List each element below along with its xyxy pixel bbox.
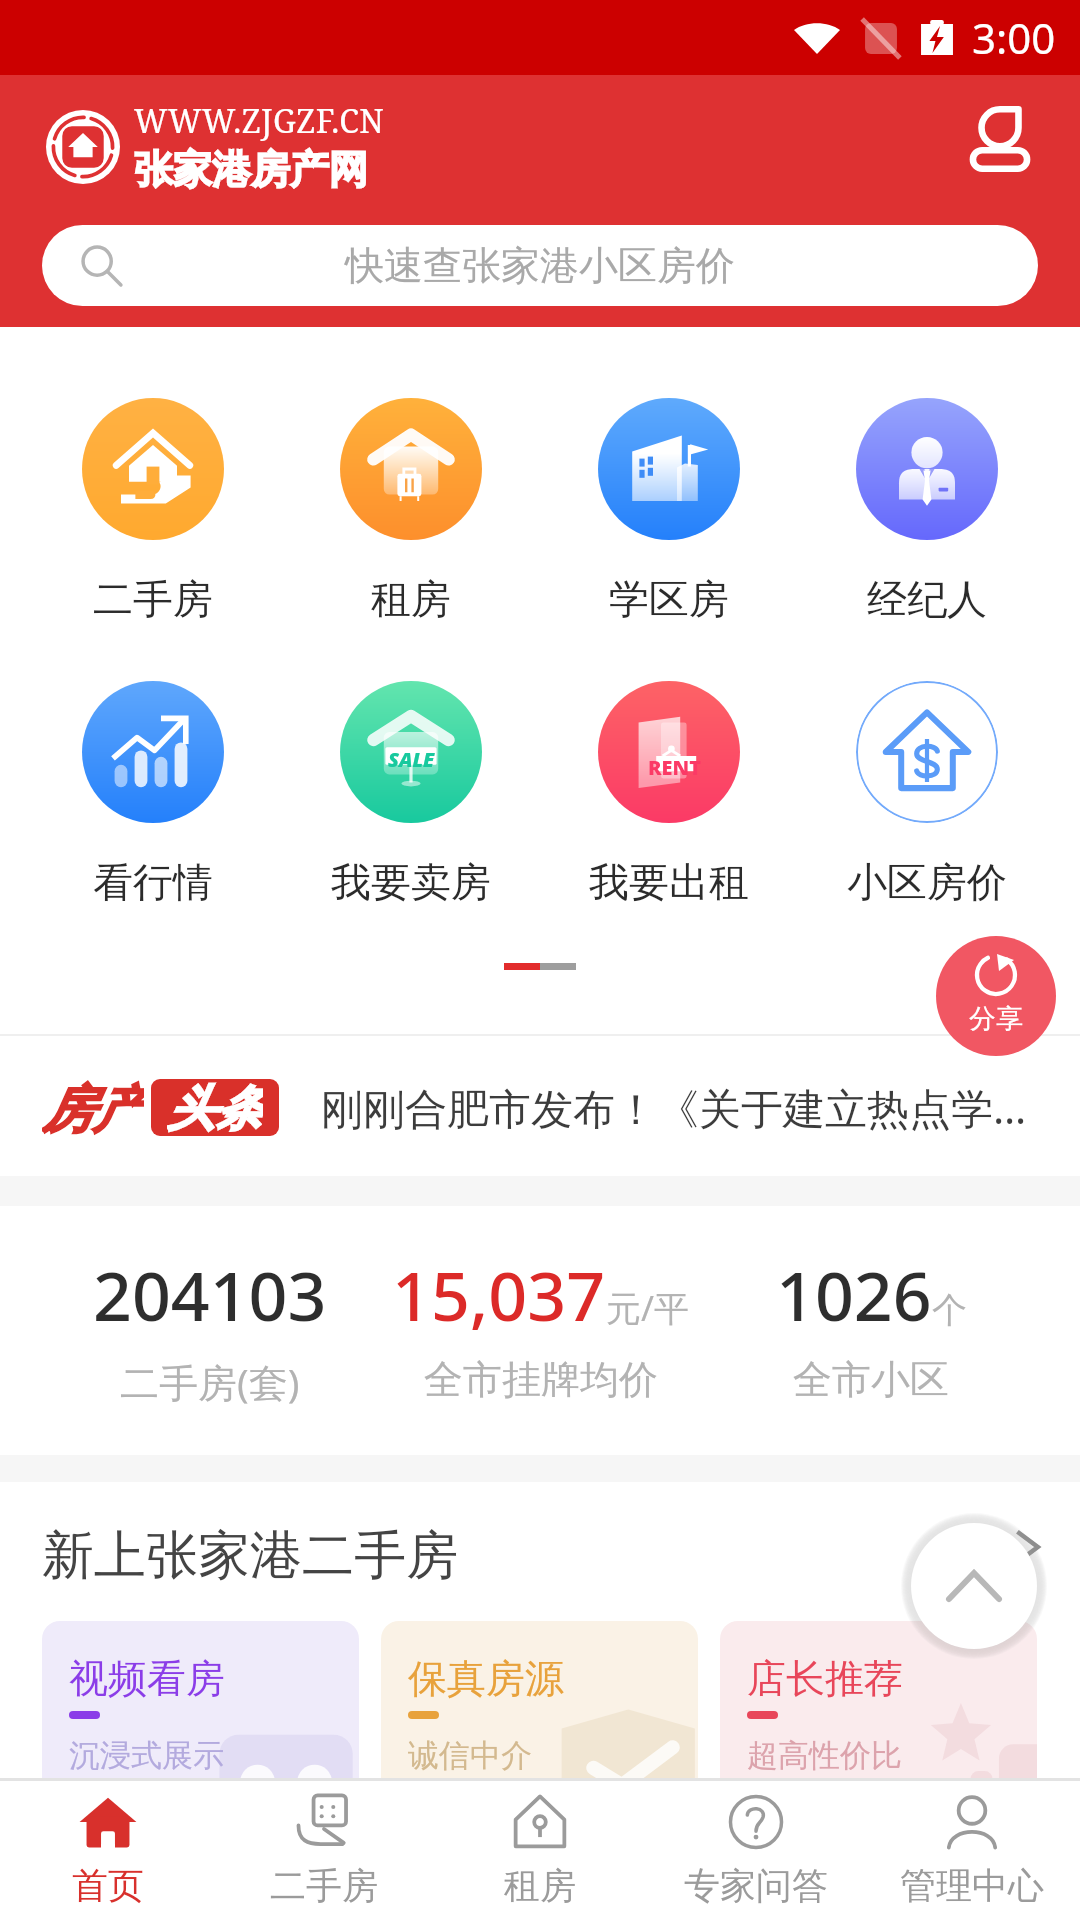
staticText: 3:00 — [972, 9, 1056, 66]
staticText: 刚刚合肥市发布！《关于建立热点学… — [321, 1079, 1027, 1136]
staticText: 我要卖房 — [331, 857, 491, 907]
staticText: 全市小区 — [793, 1355, 949, 1404]
button[interactable]: 204103 — [30, 1248, 390, 1408]
button[interactable]: 看行情 — [48, 681, 258, 907]
button[interactable]: 返回顶部 — [911, 1523, 1037, 1649]
button[interactable]: SALE — [306, 681, 516, 907]
staticText: 15,037 — [392, 1248, 606, 1341]
button[interactable]: 小区房价 — [822, 681, 1032, 907]
staticText: 诚信中介 — [408, 1736, 532, 1775]
staticText: SALE — [388, 746, 435, 773]
button[interactable]: 学区房 — [564, 398, 774, 624]
button[interactable]: 专家问答 — [648, 1781, 864, 1908]
staticText: 学区房 — [609, 574, 729, 624]
staticText: WWW.ZJGZF.CN — [134, 99, 385, 143]
button[interactable]: 视频看房 — [42, 1621, 359, 1779]
button[interactable]: 快速查张家港小区房价 — [42, 225, 1038, 306]
staticText: 超高性价比 — [747, 1736, 902, 1775]
staticText: 看行情 — [93, 857, 213, 907]
button[interactable]: 分享 — [936, 936, 1056, 1056]
staticText: 我要出租 — [589, 857, 749, 907]
staticText: 全市挂牌均价 — [424, 1355, 658, 1404]
staticText: 二手房 — [93, 574, 213, 624]
button[interactable]: 店长推荐 — [720, 1621, 1037, 1779]
button[interactable]: 房产 — [0, 1036, 1080, 1178]
button[interactable]: 1026 — [671, 1248, 1071, 1404]
staticText: 二手房 — [270, 1863, 378, 1908]
staticText: 租房 — [371, 574, 451, 624]
staticText: 204103 — [93, 1248, 327, 1341]
button[interactable]: RENT — [564, 681, 774, 907]
button[interactable]: 15,037 — [341, 1248, 741, 1404]
button[interactable]: 经纪人 — [822, 398, 1032, 624]
staticText: 沉浸式展示 — [69, 1736, 224, 1775]
staticText: 头条 — [167, 1079, 263, 1136]
staticText: 新上张家港二手房 — [42, 1523, 458, 1589]
staticText: 店长推荐 — [747, 1654, 903, 1703]
button[interactable]: 租房 — [432, 1781, 648, 1908]
staticText: 首页 — [72, 1863, 144, 1908]
button[interactable]: 首页 — [0, 1781, 216, 1908]
staticText: RENT — [648, 754, 702, 781]
staticText: 二手房(套) — [120, 1355, 300, 1408]
staticText: 快速查张家港小区房价 — [345, 241, 735, 290]
staticText: 保真房源 — [408, 1654, 564, 1703]
staticText: 租房 — [504, 1863, 576, 1908]
staticText: 专家问答 — [684, 1863, 828, 1908]
button[interactable]: 保真房源 — [381, 1621, 698, 1779]
staticText: 经纪人 — [867, 574, 987, 624]
staticText: 元/平 — [606, 1284, 690, 1332]
staticText: 分享 — [969, 1002, 1023, 1036]
staticText: 视频看房 — [69, 1654, 225, 1703]
button[interactable]: 管理中心 — [864, 1781, 1080, 1908]
button[interactable]: 租房 — [306, 398, 516, 624]
button[interactable]: 个人中心 — [952, 93, 1048, 189]
staticText: 管理中心 — [900, 1863, 1044, 1908]
button[interactable]: 二手房 — [216, 1781, 432, 1908]
staticText: 1026 — [776, 1248, 932, 1341]
staticText: 张家港房产网 — [134, 145, 368, 194]
staticText: 小区房价 — [847, 857, 1007, 907]
staticText: 房产 — [42, 1078, 144, 1136]
button[interactable]: 二手房 — [48, 398, 258, 624]
staticText: 个 — [932, 1288, 967, 1332]
